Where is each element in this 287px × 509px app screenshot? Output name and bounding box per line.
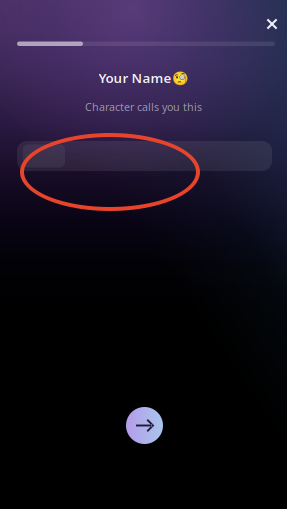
button[interactable]: Close [255, 7, 287, 41]
staticText: Your Name🧐 [98, 69, 188, 87]
staticText: Character calls you this [85, 100, 202, 114]
button[interactable]: Continue [126, 407, 163, 444]
